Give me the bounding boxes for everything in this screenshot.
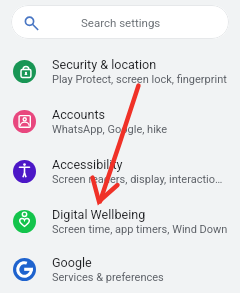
staticText: Search settings <box>81 16 161 29</box>
staticText: Screen time, app timers, Wind Down <box>52 223 228 236</box>
button[interactable]: Accounts <box>0 96 240 146</box>
button[interactable]: Search <box>11 5 229 39</box>
staticText: Screen readers, display, interactio… <box>52 173 223 186</box>
staticText: WhatsApp, Google, hike <box>52 123 168 136</box>
other: Search <box>19 12 39 32</box>
button[interactable]: Digital Wellbeing <box>0 196 240 246</box>
staticText: Accounts <box>52 107 106 122</box>
button[interactable]: Accessibility <box>0 146 240 196</box>
staticText: Security & location <box>52 57 157 72</box>
staticText: Google <box>52 255 92 270</box>
button[interactable]: Security & location <box>0 46 240 96</box>
staticText: Accessibility <box>52 157 123 172</box>
staticText: Services & preferences <box>52 271 164 284</box>
button[interactable]: Google <box>0 246 240 293</box>
staticText: Digital Wellbeing <box>52 207 146 222</box>
staticText: Play Protect, screen lock, fingerprint <box>52 73 227 86</box>
